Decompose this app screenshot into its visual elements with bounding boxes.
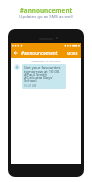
button[interactable]: Back (11, 48, 81, 58)
staticText: Get your favourites tomorrow at 10:00. #… (24, 65, 64, 83)
button[interactable]: Back (13, 50, 19, 56)
staticText: Wednesday, 25 April 2016 (11, 59, 81, 62)
staticText: Updates go as SMS as well (0, 13, 92, 19)
staticText: #announcement (0, 6, 92, 15)
staticText: #announcement (21, 50, 58, 56)
button[interactable]: MORE (65, 51, 80, 56)
button[interactable]: Get your favourites tomorrow at 10:00. #… (22, 64, 66, 89)
staticText: 10:47 AM (24, 84, 37, 88)
staticText: MORE (67, 51, 78, 56)
